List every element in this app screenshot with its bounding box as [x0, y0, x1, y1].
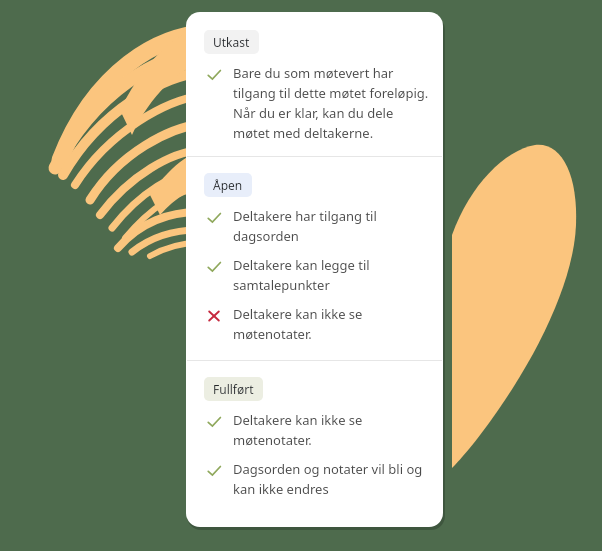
button[interactable]: Utkast: [204, 30, 259, 54]
other: Allowed: [206, 67, 222, 83]
other: Allowed: [206, 259, 222, 275]
button[interactable]: Allowed: [186, 460, 443, 498]
button[interactable]: Åpen: [204, 173, 252, 197]
staticText: Åpen: [213, 177, 243, 193]
staticText: Dagsorden og notater vil bli og kan ikke…: [233, 460, 429, 498]
button[interactable]: Allowed: [186, 411, 443, 449]
other: Not allowed: [206, 308, 222, 324]
button[interactable]: Fullført: [204, 377, 263, 401]
other: Allowed: [206, 414, 222, 430]
staticText: Deltakere har tilgang til dagsorden: [233, 207, 429, 245]
staticText: Fullført: [213, 381, 254, 397]
staticText: Deltakere kan ikke se møtenotater.: [233, 305, 429, 343]
button[interactable]: Allowed: [186, 256, 443, 294]
staticText: Deltakere kan legge til samtalepunkter: [233, 256, 429, 294]
button[interactable]: Allowed: [186, 207, 443, 245]
other: Allowed: [206, 210, 222, 226]
other: Allowed: [206, 463, 222, 479]
staticText: Bare du som møtevert har tilgang til det…: [233, 64, 429, 142]
button[interactable]: Not allowed: [186, 305, 443, 343]
staticText: Utkast: [213, 34, 250, 50]
staticText: Deltakere kan ikke se møtenotater.: [233, 411, 429, 449]
button[interactable]: Allowed: [186, 64, 443, 142]
